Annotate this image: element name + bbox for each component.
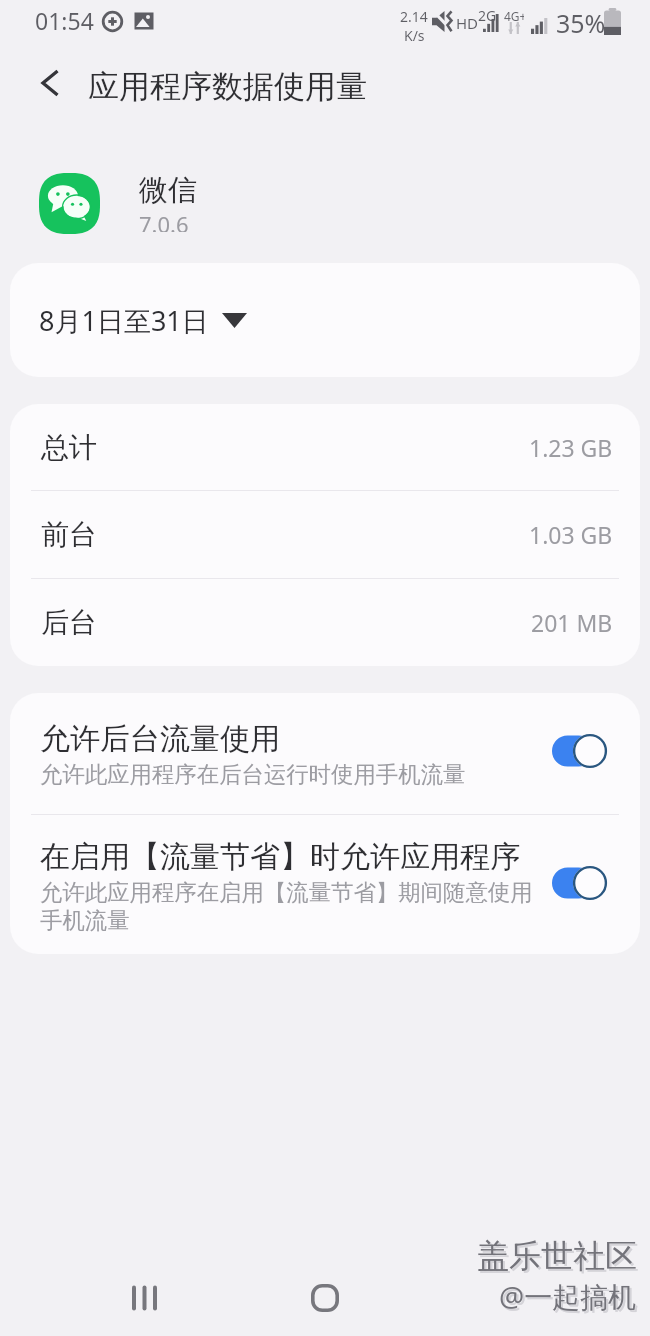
- staticText: 允许此应用程序在启用【流量节省】期间随意使用: [40, 878, 533, 906]
- staticText: 盖乐世社区: [479, 1238, 639, 1278]
- staticText: K/s: [404, 26, 425, 45]
- button[interactable]: Back: [462, 1260, 550, 1336]
- button[interactable]: Toggle: [552, 733, 608, 769]
- button[interactable]: 在启用【流量节省】时允许应用程序: [10, 815, 640, 954]
- staticText: 4G+: [504, 8, 524, 24]
- button[interactable]: 总计: [10, 404, 640, 490]
- button[interactable]: Recent apps: [100, 1260, 188, 1336]
- button[interactable]: 前台: [10, 491, 640, 578]
- staticText: 2.14: [400, 7, 428, 26]
- button[interactable]: 后台: [10, 579, 640, 666]
- staticText: 8月1日至31日: [39, 302, 209, 339]
- button[interactable]: Toggle: [552, 865, 608, 901]
- staticText: 允许此应用程序在后台运行时使用手机流量: [40, 760, 466, 788]
- staticText: 1.03 GB: [529, 519, 613, 550]
- staticText: 在启用【流量节省】时允许应用程序: [40, 838, 520, 876]
- staticText: 总计: [41, 430, 97, 465]
- staticText: 微信: [139, 172, 197, 209]
- staticText: 手机流量: [40, 906, 130, 934]
- staticText: 1.23 GB: [529, 432, 613, 463]
- staticText: 01:54: [35, 5, 94, 36]
- staticText: 盖乐世社区: [477, 1236, 637, 1276]
- staticText: 35%: [556, 6, 606, 40]
- button[interactable]: Back: [24, 61, 74, 111]
- staticText: @一起搞机: [501, 1279, 639, 1317]
- staticText: HD: [456, 13, 479, 33]
- staticText: @一起搞机: [499, 1277, 637, 1315]
- staticText: 201 MB: [531, 607, 613, 638]
- staticText: 2G: [478, 6, 497, 25]
- button[interactable]: Home: [281, 1260, 369, 1336]
- staticText: 允许后台流量使用: [40, 720, 280, 758]
- button[interactable]: 8月1日至31日: [10, 263, 640, 377]
- staticText: 应用程序数据使用量: [88, 67, 367, 106]
- staticText: 7.0.6: [139, 209, 189, 232]
- staticText: 后台: [41, 605, 97, 640]
- staticText: 前台: [41, 517, 97, 552]
- button[interactable]: 允许后台流量使用: [10, 693, 640, 814]
